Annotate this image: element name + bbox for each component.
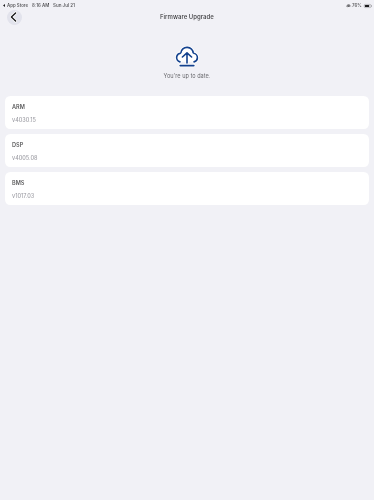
button[interactable]: Back bbox=[7, 10, 22, 25]
button[interactable]: DSP bbox=[5, 134, 369, 167]
staticText: App Store bbox=[7, 3, 29, 8]
staticText: Sun Jul 21 bbox=[53, 3, 75, 8]
staticText: v1017.03 bbox=[12, 193, 35, 200]
staticText: Firmware Upgrade bbox=[160, 13, 214, 20]
staticText: v4005.08 bbox=[12, 155, 38, 162]
button[interactable]: BMS bbox=[5, 172, 369, 205]
staticText: ARM bbox=[12, 104, 25, 111]
staticText: v4030.15 bbox=[12, 117, 36, 124]
staticText: 76% bbox=[352, 3, 362, 8]
staticText: You're up to date. bbox=[0, 73, 374, 80]
staticText: BMS bbox=[12, 180, 25, 187]
staticText: 8:16 AM bbox=[32, 3, 50, 8]
button[interactable]: ARM bbox=[5, 96, 369, 129]
staticText: DSP bbox=[12, 142, 24, 149]
